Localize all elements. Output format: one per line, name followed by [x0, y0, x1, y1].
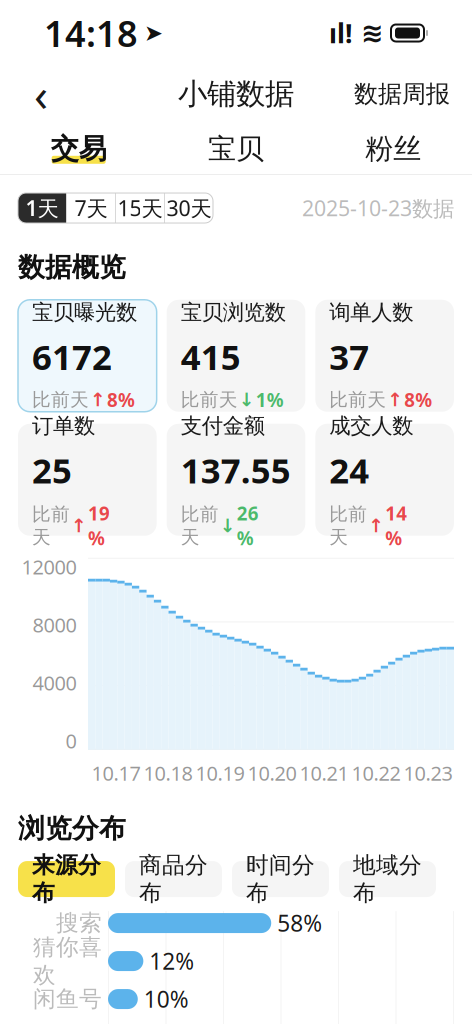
staticText: 比前天	[181, 388, 238, 411]
button[interactable]: 7天	[67, 193, 115, 223]
staticText: 比前天	[329, 388, 386, 411]
staticText: 宝贝	[208, 132, 264, 166]
staticText: 58%	[277, 908, 322, 938]
staticText: 10.22	[351, 760, 400, 786]
button[interactable]: 宝贝曝光数	[18, 300, 157, 412]
staticText: 比前天	[32, 503, 70, 549]
button[interactable]: 询单人数	[315, 300, 454, 412]
staticText: 19%	[88, 501, 110, 550]
staticText: 10.20	[247, 760, 296, 786]
staticText: 数据概览	[18, 251, 126, 284]
staticText: 37	[329, 333, 369, 379]
staticText: 猜你喜欢	[33, 933, 102, 989]
button[interactable]: 15天	[116, 193, 164, 223]
staticText: ≋	[361, 18, 383, 48]
staticText: 比前天	[329, 503, 367, 549]
staticText: 小铺数据	[178, 76, 294, 112]
staticText: 12%	[149, 946, 194, 976]
staticText: ıl!	[329, 15, 353, 51]
staticText: 宝贝曝光数	[32, 299, 137, 325]
staticText: 137.55	[181, 447, 291, 493]
staticText: 10.17	[91, 760, 140, 786]
staticText: 成交人数	[329, 413, 413, 439]
staticText: 14%	[385, 501, 407, 550]
staticText: ↑	[387, 389, 403, 410]
staticText: 交易	[51, 132, 107, 166]
staticText: 8%	[404, 387, 432, 412]
staticText: 12000	[21, 553, 76, 580]
staticText: 粉丝	[365, 132, 421, 166]
staticText: 1天	[25, 194, 58, 222]
staticText: 10.21	[299, 760, 348, 786]
staticText: 10.19	[195, 760, 244, 786]
staticText: 10%	[144, 984, 189, 1014]
button[interactable]: 时间分布	[232, 861, 329, 897]
staticText: ‹	[34, 64, 48, 124]
staticText: 数据周报	[354, 79, 450, 109]
staticText: 时间分布	[246, 851, 315, 907]
staticText: 闲鱼号	[33, 985, 102, 1013]
staticText: 订单数	[32, 413, 95, 439]
staticText: 415	[181, 333, 241, 379]
staticText: 24	[329, 447, 369, 493]
staticText: 搜索	[56, 909, 102, 937]
staticText: 1%	[256, 387, 284, 412]
staticText: 2025-10-23数据	[302, 194, 454, 222]
staticText: 8000	[32, 611, 76, 638]
button[interactable]: 30天	[165, 193, 213, 223]
staticText: ↑	[90, 389, 106, 410]
button[interactable]: 支付金额	[167, 424, 305, 536]
staticText: 6172	[32, 333, 112, 379]
staticText: 询单人数	[329, 299, 413, 325]
staticText: 宝贝浏览数	[181, 299, 286, 325]
staticText: 10.18	[143, 760, 192, 786]
staticText: 0	[65, 727, 76, 754]
button[interactable]: 来源分布	[18, 861, 115, 897]
staticText: 浏览分布	[18, 812, 126, 845]
button[interactable]: 商品分布	[125, 861, 222, 897]
staticText: 4000	[32, 669, 76, 696]
staticText: ↓	[220, 515, 236, 536]
staticText: 8%	[107, 387, 135, 412]
staticText: ➤	[144, 20, 163, 46]
button[interactable]: 成交人数	[315, 424, 454, 536]
staticText: ↓	[239, 389, 255, 410]
staticText: 比前天	[32, 388, 89, 411]
button[interactable]: 地域分布	[339, 861, 436, 897]
staticText: 来源分布	[32, 851, 101, 907]
button[interactable]: 粉丝	[315, 122, 472, 174]
button[interactable]: 订单数	[18, 424, 157, 536]
button[interactable]: 1天	[18, 193, 66, 223]
staticText: ↑	[368, 515, 384, 536]
staticText: 地域分布	[353, 851, 422, 907]
button[interactable]: 宝贝浏览数	[167, 300, 305, 412]
staticText: 7天	[74, 194, 107, 222]
staticText: 15天	[117, 194, 162, 222]
staticText: 比前天	[181, 503, 219, 549]
button[interactable]: 数据周报	[348, 71, 456, 117]
staticText: 26%	[237, 501, 259, 550]
staticText: 30天	[166, 194, 211, 222]
staticText: 支付金额	[181, 413, 265, 439]
staticText: 14:18	[44, 9, 138, 57]
button[interactable]: 宝贝	[157, 122, 315, 174]
staticText: 商品分布	[139, 851, 208, 907]
button[interactable]: 交易	[0, 122, 157, 174]
staticText: 25	[32, 447, 72, 493]
staticText: ↑	[71, 515, 87, 536]
staticText: 10.23	[403, 760, 452, 786]
button[interactable]: 返回	[16, 71, 66, 117]
